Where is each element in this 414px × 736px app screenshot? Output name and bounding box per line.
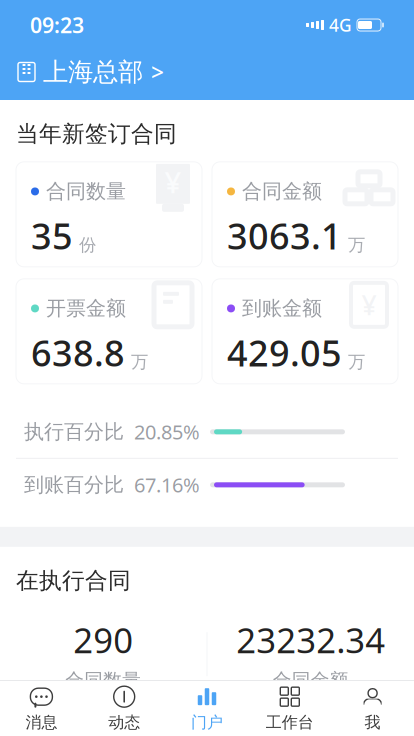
button[interactable]: 我 [331,681,414,736]
staticText: 消息 [25,713,57,732]
staticText: ¥ [164,162,181,201]
button[interactable]: 动态 [83,681,166,736]
staticText: 上海总部 [43,56,143,87]
staticText: 动态 [108,713,140,732]
staticText: 当年新签订合同 [16,120,177,148]
staticText: 合同金额 [242,179,322,204]
staticText: ¥ [361,287,376,322]
staticText: 万 [348,351,365,372]
staticText: 290 [73,617,133,663]
staticText: 638.8 [31,329,125,376]
staticText: 我 [365,713,381,732]
staticText: 4G [329,13,352,36]
button[interactable]: ¥ [212,279,398,384]
staticText: 工作台 [266,713,314,732]
staticText: 20.85% [134,419,200,445]
staticText: 合同数量 [65,669,141,692]
staticText: 在执行合同 [16,567,131,595]
staticText: 3063.1 [227,212,342,259]
staticText: 开票金额 [46,296,126,321]
button[interactable]: 工作台 [248,681,331,736]
staticText: 万 [348,234,365,255]
staticText: 35 [31,212,73,259]
staticText: 429.05 [227,329,342,376]
staticText: 份 [79,234,96,255]
staticText: 合同金额 [273,669,349,692]
button[interactable]: 上海总部 [0,47,414,97]
staticText: 到账百分比 [24,473,124,497]
button[interactable]: 合同金额 [212,162,398,267]
button[interactable]: 开票金额 [16,279,202,384]
staticText: 09:23 [30,11,84,39]
button[interactable]: ¥ [16,162,202,267]
staticText: 执行百分比 [24,420,124,444]
staticText: 门户 [191,713,223,732]
staticText: 合同数量 [46,179,126,204]
button[interactable]: 门户 [166,681,248,736]
staticText: 23232.34 [236,617,385,663]
staticText: 到账金额 [242,296,322,321]
staticText: > [151,57,164,87]
staticText: 67.16% [134,472,200,498]
staticText: 万 [131,351,148,372]
button[interactable]: 消息 [0,681,83,736]
